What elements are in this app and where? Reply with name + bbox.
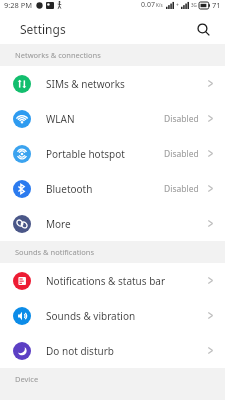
staticText: Device xyxy=(15,374,39,384)
button[interactable]: Sounds & vibration xyxy=(0,298,225,333)
staticText: Portable hotspot xyxy=(46,147,164,161)
staticText: Do not disturb xyxy=(46,344,207,358)
staticText: Notifications & status bar xyxy=(46,274,207,288)
button[interactable]: Notifications & status bar xyxy=(0,263,225,298)
staticText: K/s xyxy=(156,2,163,8)
staticText: More xyxy=(46,217,207,231)
button[interactable]: SIMs & networks xyxy=(0,66,225,101)
staticText: Networks & connections xyxy=(15,50,101,60)
staticText: Sounds & notifications xyxy=(15,247,95,257)
staticText: Disabled xyxy=(164,148,199,160)
staticText: WLAN xyxy=(46,112,164,126)
staticText: + xyxy=(176,2,179,9)
button[interactable]: Search xyxy=(191,17,215,41)
button[interactable]: Do not disturb xyxy=(0,333,225,368)
staticText: 71 xyxy=(212,0,221,10)
staticText: SIMs & networks xyxy=(46,77,207,91)
button[interactable]: Bluetooth xyxy=(0,171,225,206)
staticText: Settings xyxy=(20,21,66,37)
staticText: 3G xyxy=(191,2,197,8)
staticText: Sounds & vibration xyxy=(46,309,207,323)
button[interactable]: WLAN xyxy=(0,101,225,136)
staticText: Disabled xyxy=(164,113,199,125)
staticText: 9:28 PM xyxy=(4,0,33,10)
staticText: 0.07 xyxy=(141,0,155,10)
staticText: Disabled xyxy=(164,183,199,195)
button[interactable]: Portable hotspot xyxy=(0,136,225,171)
staticText: Bluetooth xyxy=(46,182,164,196)
button[interactable]: More xyxy=(0,206,225,241)
